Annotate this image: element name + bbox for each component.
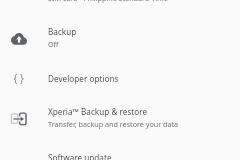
staticText: Backup [48,26,77,37]
button[interactable]: Date & time [0,0,240,7]
staticText: SIM card · Philippine Standard Time [48,0,168,3]
staticText: Off [48,39,59,49]
other: Xperia Backup and restore [11,111,27,127]
button[interactable]: Xperia Backup and restore [0,98,240,140]
other: Backup [11,31,27,47]
button[interactable]: Backup [0,7,240,47]
staticText: Developer options [48,73,119,84]
staticText: Xperia™ Backup & restore [48,106,148,117]
staticText: Software update [48,152,112,160]
other: Developer options [11,71,27,87]
button[interactable]: Software update [0,140,240,160]
staticText: Transfer, backup and restore your data [48,119,179,129]
button[interactable]: Developer options [0,59,240,98]
